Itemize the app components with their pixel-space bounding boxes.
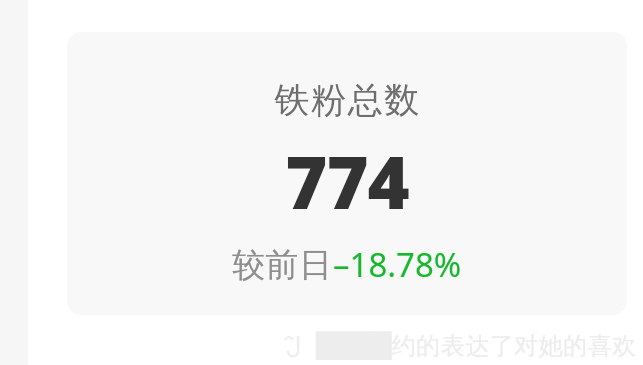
other: Weibo watermark (282, 333, 308, 359)
staticText: ████约的表达了对她的喜欢 (316, 331, 637, 361)
staticText: 774 (285, 132, 409, 230)
staticText: 较前日 (232, 244, 333, 286)
staticText: –18.78% (333, 242, 462, 287)
staticText: 铁粉总数 (274, 78, 420, 122)
button[interactable]: 铁粉总数 (67, 32, 627, 315)
